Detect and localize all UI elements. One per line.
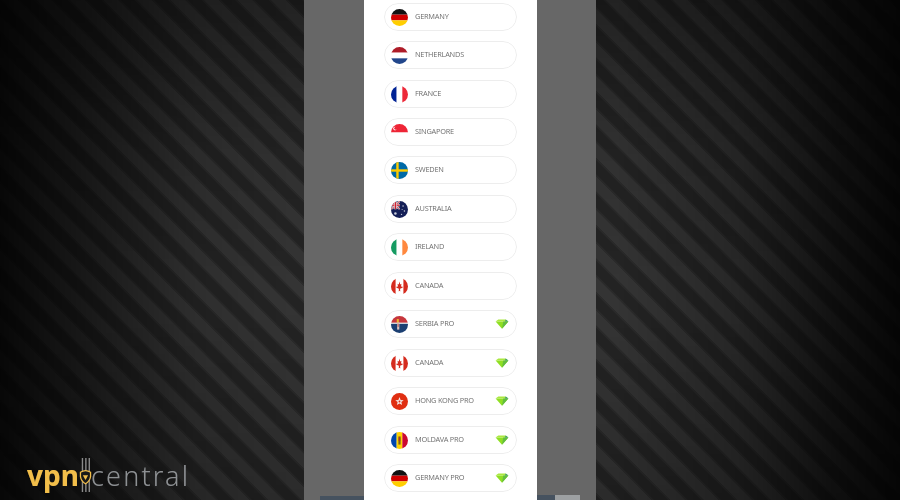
staticText: IRELAND: [415, 241, 445, 251]
button[interactable]: CANADA: [384, 272, 517, 300]
button[interactable]: GERMANY PRO: [384, 464, 517, 492]
button[interactable]: IRELAND: [384, 233, 517, 261]
button[interactable]: SWEDEN: [384, 156, 517, 184]
button[interactable]: HONG KONG PRO: [384, 387, 517, 415]
staticText: SWEDEN: [415, 164, 444, 174]
button[interactable]: FRANCE: [384, 80, 517, 108]
button[interactable]: NETHERLANDS: [384, 41, 517, 69]
staticText: central: [91, 457, 191, 494]
other: Premium: [494, 432, 510, 448]
staticText: GERMANY PRO: [415, 472, 465, 482]
button[interactable]: AUSTRALIA: [384, 195, 517, 223]
staticText: SERBIA PRO: [415, 318, 455, 328]
button[interactable]: GERMANY: [384, 3, 517, 31]
button[interactable]: SERBIA PRO: [384, 310, 517, 338]
other: Premium: [494, 316, 510, 332]
staticText: FRANCE: [415, 88, 442, 98]
other: Premium: [494, 393, 510, 409]
button[interactable]: CANADA: [384, 349, 517, 377]
staticText: CANADA: [415, 357, 444, 367]
staticText: vpn: [27, 456, 79, 494]
staticText: AUSTRALIA: [415, 203, 452, 213]
staticText: GERMANY: [415, 11, 449, 21]
button[interactable]: SINGAPORE: [384, 118, 517, 146]
other: Premium: [494, 470, 510, 486]
staticText: HONG KONG PRO: [415, 395, 474, 405]
button[interactable]: MOLDAVA PRO: [384, 426, 517, 454]
staticText: CANADA: [415, 280, 444, 290]
other: Premium: [494, 355, 510, 371]
staticText: NETHERLANDS: [415, 49, 464, 59]
staticText: MOLDAVA PRO: [415, 434, 464, 444]
staticText: SINGAPORE: [415, 126, 454, 136]
